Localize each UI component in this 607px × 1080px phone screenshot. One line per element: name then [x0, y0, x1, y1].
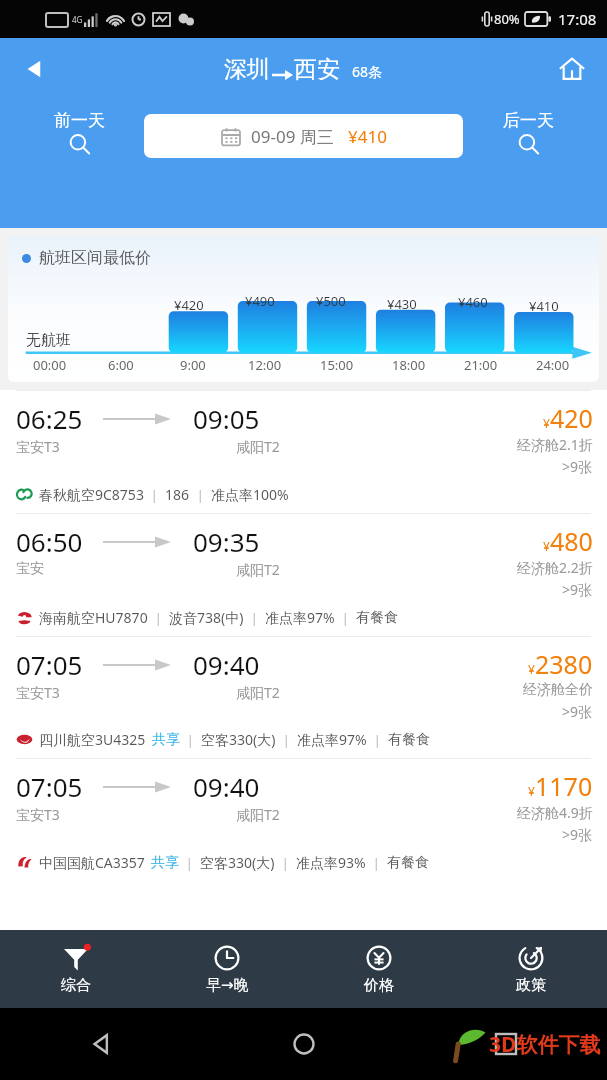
- staticText: 07:05: [16, 647, 83, 682]
- staticText: >9张: [562, 825, 593, 844]
- staticText: ¥500: [316, 292, 346, 310]
- staticText: 空客330(大): [201, 730, 276, 749]
- staticText: 四川航空3U4325: [39, 730, 146, 749]
- staticText: 宝安T3: [16, 437, 60, 456]
- staticText: ¥410: [529, 297, 559, 315]
- staticText: 24:00: [536, 356, 570, 374]
- button[interactable]: 早→晚: [151, 930, 303, 1008]
- button[interactable]: 07:05: [0, 759, 607, 881]
- staticText: 前一天: [54, 110, 105, 131]
- staticText: 经济舱全价: [523, 681, 593, 699]
- staticText: ¥: [543, 415, 550, 431]
- staticText: 有餐食: [388, 731, 430, 749]
- button[interactable]: Home: [283, 1023, 325, 1065]
- staticText: ¥: [543, 538, 550, 554]
- staticText: 80%: [494, 10, 520, 28]
- staticText: 咸阳T2: [236, 437, 280, 456]
- staticText: 早→晚: [206, 976, 249, 995]
- button[interactable]: 前一天: [14, 110, 144, 155]
- button[interactable]: 综合: [0, 930, 151, 1008]
- staticText: 深圳: [224, 55, 270, 84]
- staticText: 经济舱2.1折: [517, 435, 593, 454]
- staticText: 准点率100%: [211, 485, 289, 504]
- button[interactable]: 09-09 周三: [144, 114, 463, 158]
- button[interactable]: Recents: [486, 1024, 526, 1064]
- staticText: 共享: [152, 731, 180, 749]
- staticText: ¥: [528, 661, 535, 677]
- button[interactable]: Home: [549, 46, 595, 92]
- staticText: 15:00: [320, 356, 354, 374]
- staticText: 波音738(中): [169, 608, 244, 627]
- staticText: |: [148, 609, 169, 627]
- staticText: 480: [550, 524, 593, 558]
- staticText: |: [366, 854, 387, 872]
- button[interactable]: 后一天: [463, 110, 593, 155]
- staticText: 航班区间最低价: [39, 248, 151, 268]
- staticText: ¥420: [174, 296, 204, 314]
- staticText: 价格: [364, 976, 394, 995]
- staticText: >9张: [562, 702, 593, 721]
- staticText: |: [179, 854, 200, 872]
- staticText: |: [367, 731, 388, 749]
- staticText: 1170: [535, 769, 593, 803]
- staticText: 09-09 周三: [251, 125, 334, 148]
- staticText: 6:00: [108, 356, 134, 374]
- staticText: >9张: [562, 457, 593, 476]
- staticText: ¥410: [348, 125, 387, 148]
- staticText: ¥460: [458, 293, 488, 311]
- staticText: 09:40: [193, 647, 260, 682]
- staticText: >9张: [562, 580, 593, 599]
- staticText: 宝安: [16, 560, 44, 578]
- button[interactable]: 06:25: [0, 391, 607, 513]
- staticText: 18:00: [392, 356, 426, 374]
- staticText: 09:05: [193, 401, 260, 436]
- staticText: |: [244, 609, 265, 627]
- staticText: ¥: [528, 783, 535, 799]
- staticText: 17:08: [558, 9, 597, 29]
- staticText: 中国国航CA3357: [39, 853, 145, 872]
- staticText: 空客330(大): [200, 853, 275, 872]
- staticText: 准点率93%: [296, 853, 366, 872]
- staticText: 21:00: [464, 356, 498, 374]
- staticText: 咸阳T2: [236, 560, 280, 579]
- staticText: 09:40: [193, 769, 260, 804]
- staticText: 06:50: [16, 524, 83, 559]
- staticText: 00:00: [33, 356, 67, 374]
- staticText: 咸阳T2: [236, 683, 280, 702]
- staticText: 9:00: [180, 356, 206, 374]
- button[interactable]: 航班区间最低价: [8, 236, 599, 382]
- staticText: 06:25: [16, 401, 83, 436]
- staticText: 春秋航空9C8753: [39, 485, 144, 504]
- staticText: ¥490: [245, 292, 275, 310]
- staticText: 政策: [516, 976, 546, 995]
- staticText: 后一天: [503, 110, 554, 131]
- staticText: ¥430: [387, 295, 417, 313]
- staticText: |: [190, 486, 211, 504]
- button[interactable]: Back: [12, 46, 58, 92]
- staticText: 186: [165, 485, 190, 504]
- staticText: 准点率97%: [265, 608, 335, 627]
- staticText: |: [276, 731, 297, 749]
- button[interactable]: Back: [81, 1023, 123, 1065]
- staticText: 有餐食: [387, 854, 429, 872]
- staticText: 西安: [294, 55, 340, 84]
- staticText: 68条: [352, 62, 383, 81]
- staticText: |: [275, 854, 296, 872]
- staticText: 4G: [72, 14, 83, 25]
- staticText: 经济舱2.2折: [517, 558, 593, 577]
- staticText: 准点率97%: [297, 730, 367, 749]
- staticText: 海南航空HU7870: [39, 608, 148, 627]
- button[interactable]: 06:50: [0, 514, 607, 636]
- staticText: |: [144, 486, 165, 504]
- staticText: 无航班: [26, 331, 71, 350]
- staticText: 宝安T3: [16, 683, 60, 702]
- staticText: 经济舱4.9折: [517, 803, 593, 822]
- staticText: 12:00: [248, 356, 282, 374]
- button[interactable]: 政策: [455, 930, 607, 1008]
- staticText: 宝安T3: [16, 805, 60, 824]
- staticText: 420: [550, 401, 593, 435]
- button[interactable]: 价格: [303, 930, 455, 1008]
- button[interactable]: 07:05: [0, 637, 607, 758]
- staticText: |: [180, 731, 201, 749]
- staticText: 有餐食: [356, 609, 398, 627]
